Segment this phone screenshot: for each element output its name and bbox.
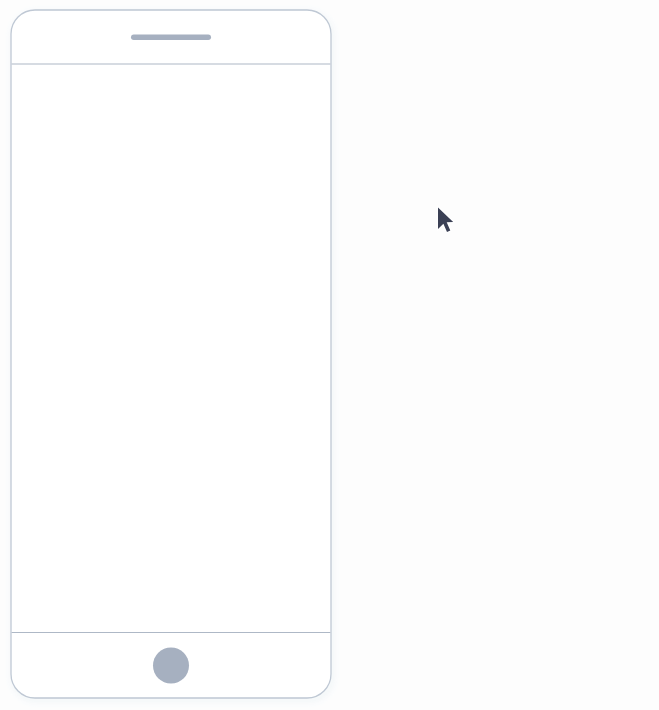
button[interactable]: Phone device preview — [0, 0, 659, 710]
